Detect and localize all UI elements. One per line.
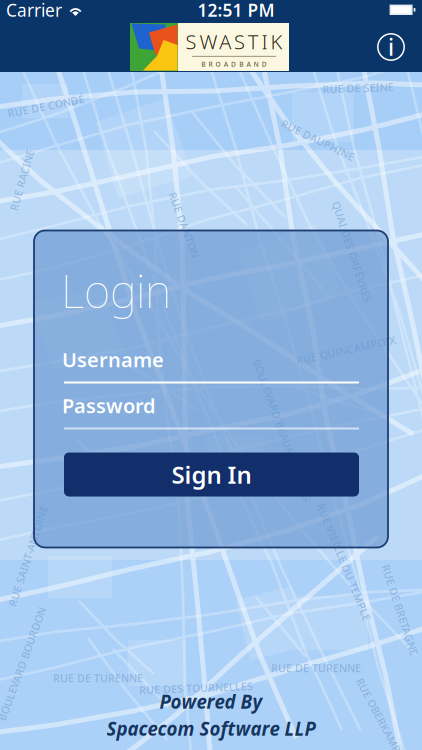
staticText: BOULEVARD BEAUMARCHAIS [207, 423, 357, 437]
staticText: BOULEVARD BOURDON [0, 657, 82, 671]
staticText: RUE SAINT-ANTOINE [0, 549, 80, 563]
staticText: RUE DE TURENNE [53, 671, 143, 685]
staticText: Carrier [6, 0, 62, 21]
staticText: Login [61, 260, 171, 321]
button[interactable]: Information [369, 25, 413, 69]
staticText: Sign In [171, 459, 251, 490]
staticText: 12:51 PM [197, 0, 274, 21]
staticText: RUE DE BRETAGNE [352, 603, 422, 617]
staticText: RUE DE CONDÉ [7, 99, 85, 113]
staticText: Password [62, 392, 156, 419]
staticText: QUAI DES ORFÈVRES [299, 245, 405, 259]
staticText: Spacecom Software LLP [106, 716, 315, 741]
staticText: i [388, 32, 394, 62]
staticText: Powered By [159, 689, 262, 714]
button[interactable]: Sign In [64, 452, 359, 496]
staticText: SWASTIK [186, 28, 282, 55]
staticText: RUE RACINE [0, 173, 53, 187]
staticText: RUE DE SEINE [322, 81, 393, 95]
staticText: Username [62, 346, 164, 373]
staticText: RUE QUINCAMPOIX [295, 343, 397, 357]
staticText: RUE DES TOURNELLES [139, 681, 253, 695]
staticText: RUE DANTON [149, 218, 218, 232]
staticText: RUE DE TURENNE [271, 661, 361, 675]
staticText: RUE VIEILLE DU TEMPLE [281, 555, 407, 569]
staticText: B R O A D B A N D [201, 60, 267, 69]
staticText: RUE DAUPHINE [278, 133, 358, 147]
staticText: RUE OBERKAMPF [335, 711, 422, 725]
